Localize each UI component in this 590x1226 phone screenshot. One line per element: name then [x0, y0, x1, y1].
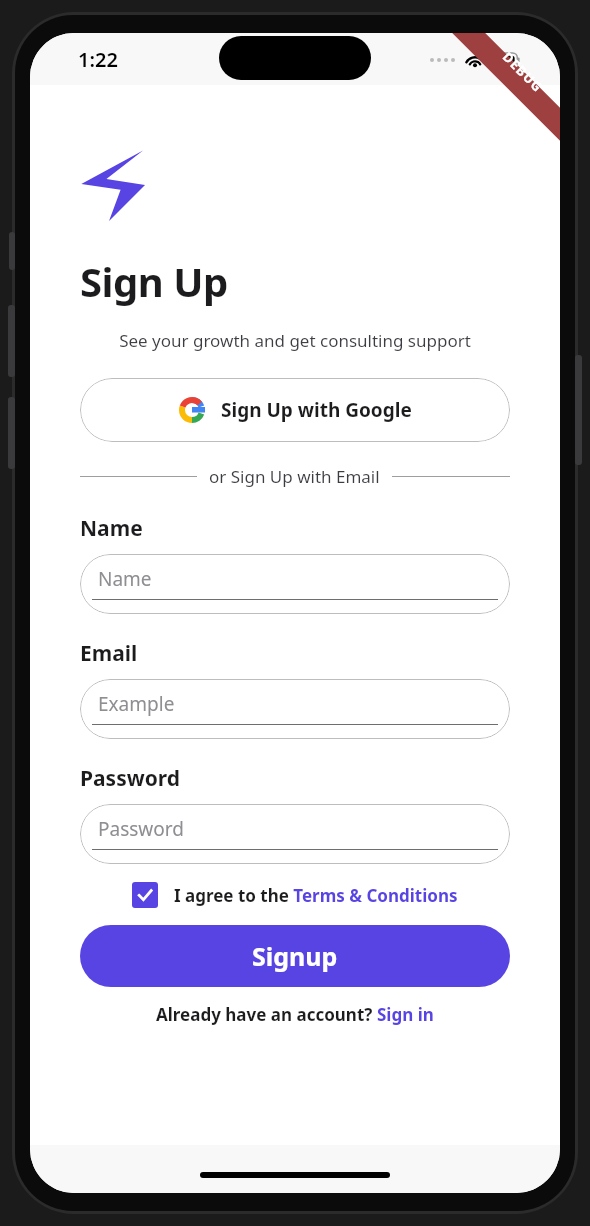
staticText: or Sign Up with Email	[209, 465, 380, 488]
button[interactable]: Password	[80, 804, 510, 864]
staticText: Email	[80, 639, 138, 668]
staticText: Example	[98, 691, 175, 717]
staticText: Name	[80, 514, 143, 543]
staticText: Password	[80, 764, 181, 793]
staticText: Sign Up	[80, 254, 228, 308]
button[interactable]: Example	[80, 679, 510, 739]
button[interactable]: Sign in	[377, 1003, 434, 1026]
staticText: Already have an account?	[156, 1003, 377, 1026]
staticText: 1:22	[78, 46, 118, 73]
staticText: See your growth and get consulting suppo…	[80, 329, 510, 352]
staticText: DEBUG	[499, 48, 547, 96]
staticText: Password	[98, 816, 184, 842]
button[interactable]: Signup	[80, 925, 510, 987]
staticText: Name	[98, 566, 152, 592]
button[interactable]: Sign Up with Google	[80, 378, 510, 442]
button[interactable]: I agree to the Terms & Conditions	[80, 882, 510, 908]
staticText: Sign Up with Google	[221, 397, 412, 423]
staticText: I agree to the Terms & Conditions	[174, 884, 458, 907]
button[interactable]: Name	[80, 554, 510, 614]
staticText: Signup	[252, 939, 338, 973]
